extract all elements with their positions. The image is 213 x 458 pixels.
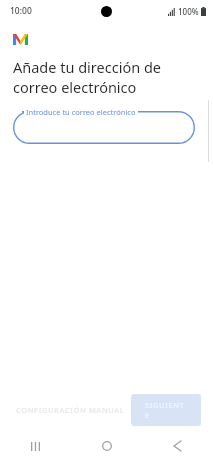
button[interactable]: CONFIGURACIÓN MANUAL [10,399,131,421]
button[interactable]: Back [142,434,213,458]
staticText: 100% [178,6,199,17]
staticText: Añade tu dirección de correo electrónico [13,57,193,97]
button[interactable]: Introduce tu correo electrónico [13,111,195,144]
button[interactable]: Recents [0,434,71,458]
staticText: SIGUIENTE [145,400,187,420]
button[interactable]: Home [71,434,142,458]
button[interactable]: SIGUIENTE [131,394,201,426]
staticText: Introduce tu correo electrónico [26,107,136,117]
staticText: CONFIGURACIÓN MANUAL [16,405,125,415]
staticText: 10:00 [10,5,32,17]
